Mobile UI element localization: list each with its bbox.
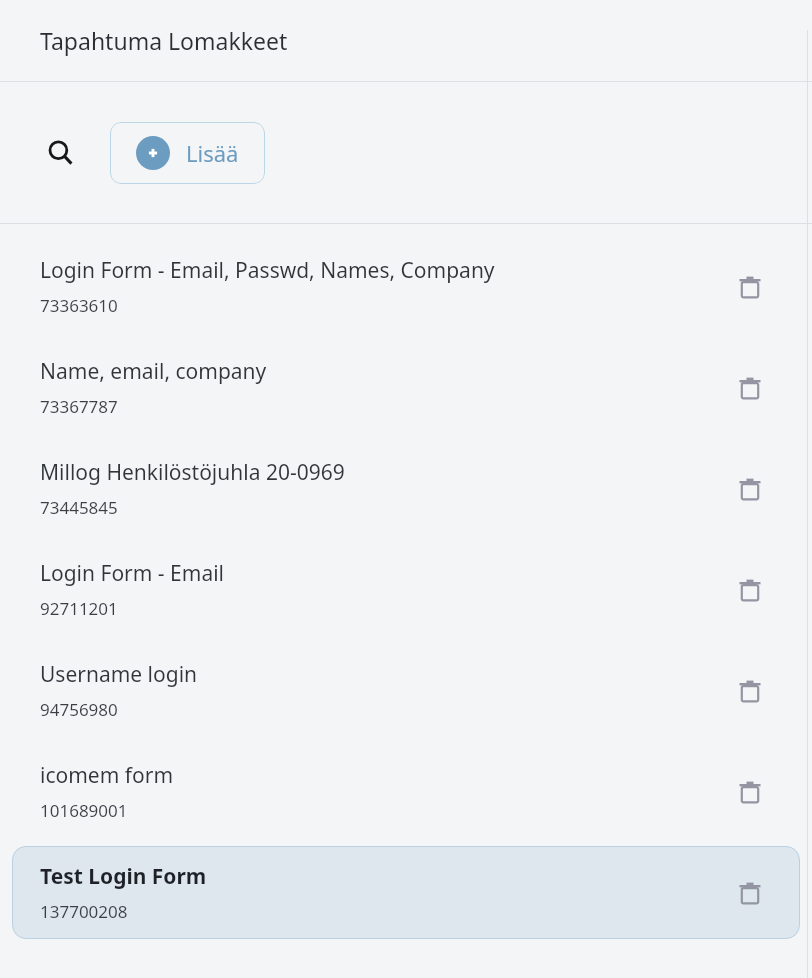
staticText: 137700208 [40,900,128,923]
button[interactable]: icomem form [0,741,812,842]
staticText: Test Login Form [40,862,207,891]
staticText: 101689001 [40,799,128,822]
staticText: 73445845 [40,496,118,519]
button[interactable]: Search [40,132,82,174]
staticText: Username login [40,660,198,689]
button[interactable]: Test Login Form [12,846,800,939]
button[interactable]: Delete [728,669,772,713]
button[interactable]: Delete [728,366,772,410]
staticText: 73363610 [40,294,118,317]
button[interactable]: Millog Henkilöstöjuhla 20-0969 [0,438,812,539]
staticText: icomem form [40,761,174,790]
staticText: Lisää [186,138,239,168]
button[interactable]: Delete [728,265,772,309]
staticText: Login Form - Email, Passwd, Names, Compa… [40,256,495,285]
button[interactable]: Login Form - Email, Passwd, Names, Compa… [0,236,812,337]
button[interactable]: Login Form - Email [0,539,812,640]
staticText: 94756980 [40,698,118,721]
staticText: 92711201 [40,597,118,620]
button[interactable]: Username login [0,640,812,741]
button[interactable]: Delete [728,770,772,814]
button[interactable]: Name, email, company [0,337,812,438]
staticText: Tapahtuma Lomakkeet [40,25,288,56]
staticText: Millog Henkilöstöjuhla 20-0969 [40,458,345,487]
staticText: Login Form - Email [40,559,225,588]
staticText: 73367787 [40,395,118,418]
button[interactable]: Delete [728,467,772,511]
staticText: Name, email, company [40,357,267,386]
button[interactable]: Delete [728,871,772,915]
button[interactable]: Delete [728,568,772,612]
button[interactable]: Lisää [110,122,265,184]
